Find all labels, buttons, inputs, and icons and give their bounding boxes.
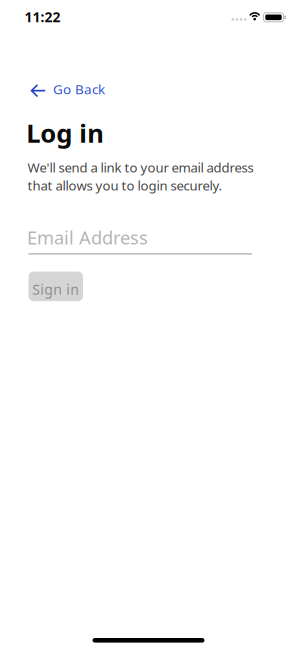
button[interactable]: Email Address [27, 229, 252, 255]
staticText: We'll send a link to your email address … [28, 159, 254, 194]
staticText: Sign in [32, 280, 79, 298]
staticText: Go Back [53, 80, 105, 98]
staticText: 11:22 [24, 8, 60, 26]
staticText: Email Address [27, 225, 148, 250]
button[interactable]: Go Back [31, 80, 109, 98]
staticText: Log in [26, 116, 104, 150]
button[interactable]: Sign in [28, 272, 83, 301]
